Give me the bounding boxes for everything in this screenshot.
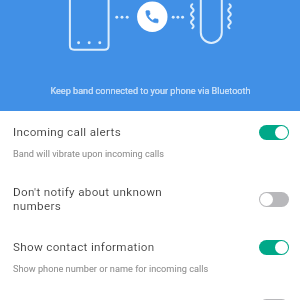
staticText: Band will vibrate upon incoming calls [13,148,165,159]
button[interactable]: Switch on [259,240,289,255]
staticText: Show phone number or name for incoming c… [13,263,209,274]
button[interactable]: Don't notify about unknown numbers [0,172,300,227]
button[interactable]: Switch off [259,192,289,207]
button[interactable]: Incoming call alerts [0,112,300,172]
staticText: Incoming call alerts [13,125,209,139]
staticText: Show contact information [13,240,209,254]
button[interactable]: Switch off [259,299,289,300]
button[interactable]: Show contact information [0,227,300,286]
staticText: Don't notify about unknown numbers [13,185,209,213]
button[interactable]: Vibrate for text messages [0,286,300,300]
staticText: Keep band connected to your phone via Bl… [50,86,251,97]
button[interactable]: Switch on [259,125,289,140]
